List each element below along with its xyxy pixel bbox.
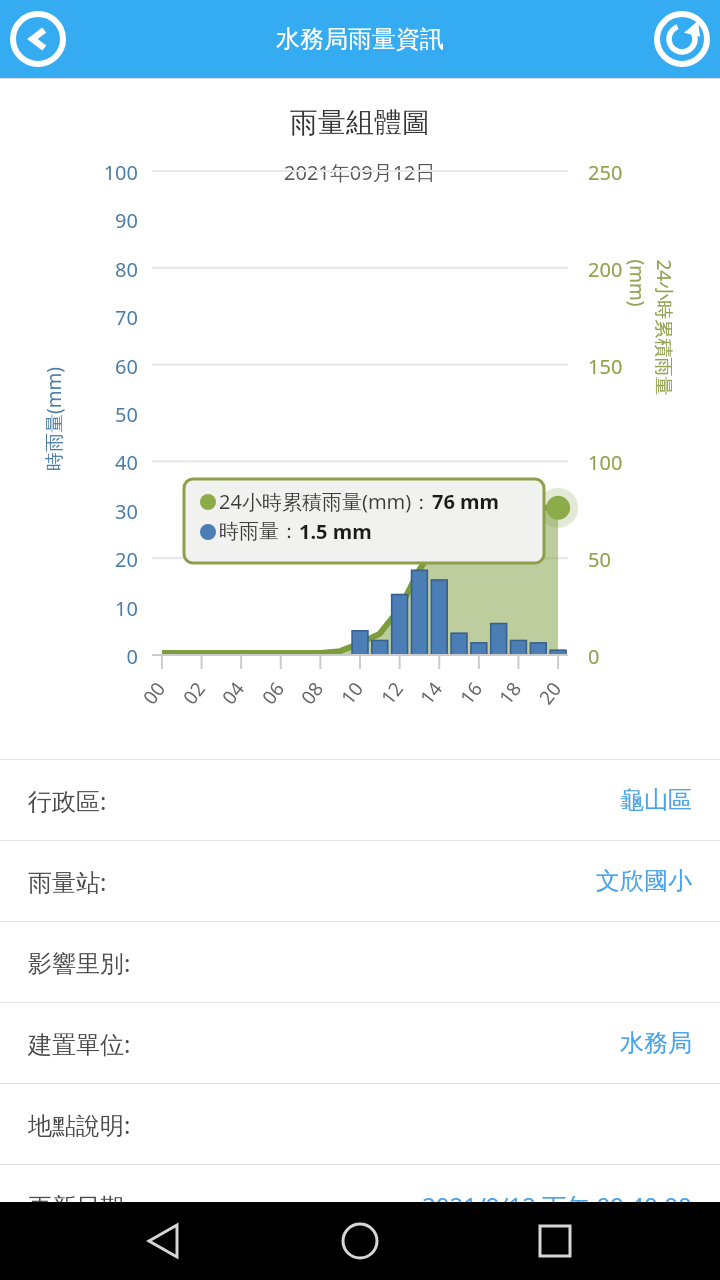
staticText: 90	[78, 207, 138, 234]
staticText: 50	[78, 401, 138, 428]
staticText: 80	[78, 256, 138, 283]
staticText: 76 mm	[432, 488, 500, 515]
staticText: 200	[588, 256, 623, 283]
staticText: 行政區:	[28, 784, 107, 817]
staticText: 建置單位:	[28, 1027, 131, 1060]
button[interactable]: Home	[330, 1211, 390, 1271]
staticText: 100	[78, 159, 138, 186]
button[interactable]: 更新日期:	[0, 1165, 720, 1245]
staticText: 06	[256, 676, 290, 710]
staticText: 2021/9/12 下午 09:40:00	[422, 1189, 692, 1222]
staticText: 水務局雨量資訊	[276, 24, 444, 54]
button[interactable]: 建置單位:	[0, 1003, 720, 1083]
staticText: 250	[588, 159, 623, 186]
staticText: 20	[78, 546, 138, 573]
staticText: 20	[533, 676, 567, 710]
staticText: 50	[588, 546, 611, 573]
staticText: 24小時累積雨量(mm)	[623, 259, 676, 419]
staticText: 0	[78, 643, 138, 670]
staticText: 2021年09月12日	[284, 159, 436, 186]
staticText: 雨量站:	[28, 865, 107, 898]
staticText: 更新日期:	[28, 1189, 131, 1222]
staticText: 時雨量：	[219, 519, 299, 544]
button[interactable]: Back	[8, 9, 68, 69]
staticText: 08	[295, 676, 329, 710]
staticText: 00	[137, 676, 171, 710]
staticText: 30	[78, 498, 138, 525]
staticText: 龜山區	[620, 785, 692, 815]
staticText: 1.5 mm	[299, 518, 372, 545]
staticText: 40	[78, 449, 138, 476]
staticText: 地點說明:	[28, 1108, 131, 1141]
staticText: 10	[78, 595, 138, 622]
staticText: 100	[588, 449, 623, 476]
staticText: 0	[588, 643, 600, 670]
staticText: 02	[177, 676, 211, 710]
button[interactable]: 雨量站:	[0, 841, 720, 921]
staticText: 文欣國小	[596, 866, 692, 896]
staticText: 水務局	[620, 1028, 692, 1058]
staticText: 04	[216, 676, 250, 710]
staticText: 影響里別:	[28, 946, 131, 979]
button[interactable]: Back	[135, 1211, 195, 1271]
staticText: 18	[493, 676, 527, 710]
staticText: 雨量組體圖	[290, 105, 430, 140]
staticText: 60	[78, 353, 138, 380]
staticText: 24小時累積雨量(mm)：	[219, 488, 432, 515]
staticText: 14	[414, 676, 448, 710]
button[interactable]: Recents	[525, 1211, 585, 1271]
staticText: 16	[454, 676, 488, 710]
button[interactable]: 行政區:	[0, 760, 720, 840]
staticText: 150	[588, 353, 623, 380]
button[interactable]: 地點說明:	[0, 1084, 720, 1164]
staticText: 時雨量(mm)	[41, 367, 67, 471]
staticText: 10	[335, 676, 369, 710]
staticText: 70	[78, 304, 138, 331]
staticText: 12	[375, 676, 409, 710]
button[interactable]: Refresh	[652, 9, 712, 69]
button[interactable]: 影響里別:	[0, 922, 720, 1002]
